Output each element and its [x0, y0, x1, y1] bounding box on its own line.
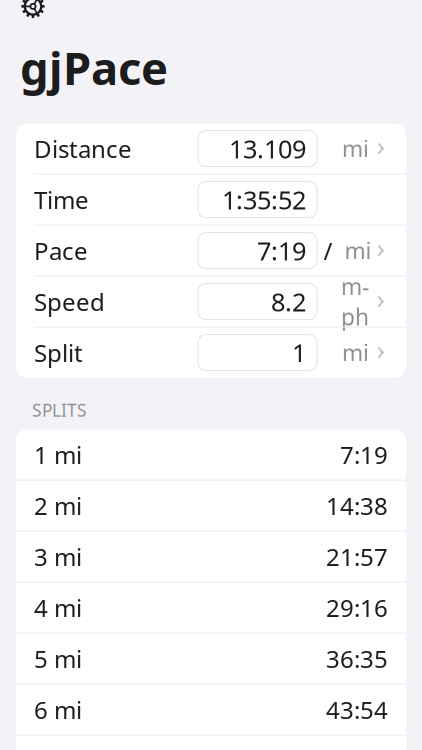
staticText: 2 mi [34, 490, 82, 522]
staticText: gjPace [20, 37, 168, 98]
button[interactable]: Distance [16, 124, 406, 174]
staticText: Distance [34, 133, 132, 165]
staticText: 3 mi [34, 541, 82, 573]
button[interactable]: 4 mi [16, 583, 406, 633]
button[interactable]: 5 mi [16, 634, 406, 684]
staticText: 14:38 [326, 490, 388, 522]
staticText: 7:19 [257, 234, 306, 267]
button[interactable]: Time [16, 175, 406, 225]
staticText: Split [34, 337, 83, 369]
staticText: mi [344, 235, 371, 266]
staticText: mph [341, 271, 369, 332]
staticText: 29:16 [326, 592, 388, 624]
staticText: 21:57 [326, 541, 388, 573]
staticText: 13.109 [229, 132, 306, 165]
button[interactable]: 6 mi [16, 685, 406, 735]
staticText: Speed [34, 286, 105, 318]
staticText: 43:54 [326, 694, 388, 726]
staticText: 4 mi [34, 592, 82, 624]
button[interactable]: Split [16, 328, 406, 378]
staticText: 6 mi [34, 694, 82, 726]
button[interactable]: 1 mi [16, 430, 406, 480]
button[interactable]: Speed [16, 277, 406, 327]
staticText: Time [34, 184, 89, 216]
staticText: 36:35 [326, 643, 388, 675]
button[interactable]: Settings [16, 0, 50, 21]
staticText: 1 [292, 336, 306, 369]
staticText: 1 mi [34, 439, 82, 471]
button[interactable]: Pace [16, 226, 406, 276]
staticText: mi [342, 337, 369, 368]
staticText: SPLITS [32, 399, 87, 422]
staticText: 8.2 [271, 285, 306, 318]
staticText: / [323, 235, 332, 267]
button[interactable]: 2 mi [16, 481, 406, 531]
staticText: mi [342, 133, 369, 164]
staticText: Pace [34, 235, 88, 267]
staticText: 1:35:52 [222, 183, 306, 216]
staticText: 7:19 [340, 439, 388, 471]
button[interactable]: 3 mi [16, 532, 406, 582]
staticText: 5 mi [34, 643, 82, 675]
